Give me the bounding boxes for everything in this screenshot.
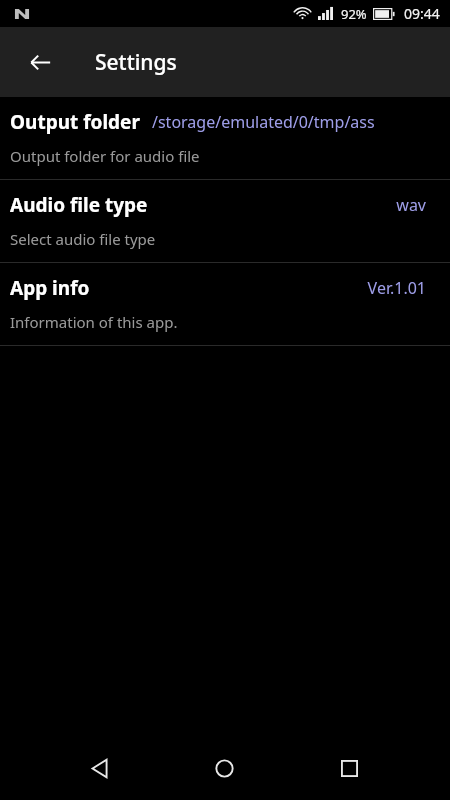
staticText: 92% [341,5,367,23]
staticText: Information of this app. [10,312,178,332]
button[interactable]: Back [76,744,124,792]
staticText: Settings [95,48,177,77]
button[interactable]: Back [17,39,63,85]
button[interactable]: Recent apps [325,744,373,792]
staticText: /storage/emulated/0/tmp/ass [152,111,375,133]
staticText: Output folder for audio file [10,146,200,166]
button[interactable]: App info [0,263,450,345]
button[interactable]: Output folder [0,97,450,179]
staticText: App info [10,275,90,301]
staticText: Ver.1.01 [367,277,426,299]
staticText: 09:44 [404,4,440,23]
button[interactable]: Audio file type [0,180,450,262]
staticText: Output folder [10,109,140,135]
staticText: wav [396,194,426,216]
staticText: Audio file type [10,192,148,218]
staticText: Select audio file type [10,229,156,249]
button[interactable]: Home [200,744,248,792]
